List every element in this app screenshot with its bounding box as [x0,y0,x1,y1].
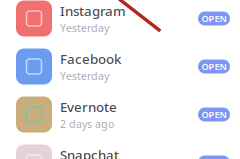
staticText: OPEN [201,60,226,73]
button[interactable]: Instagram [0,0,240,42]
staticText: Instagram [60,2,126,20]
staticText: Yesterday [60,69,109,83]
button[interactable]: Snapchat [0,138,240,159]
staticText: 2 days ago [60,117,114,131]
staticText: Yesterday [60,21,109,35]
staticText: Snapchat [60,146,119,159]
button[interactable]: Facebook [0,42,240,90]
staticText: OPEN [201,108,226,121]
staticText: OPEN [201,12,226,25]
staticText: Facebook [60,50,121,68]
button[interactable]: Evernote [0,90,240,138]
staticText: Evernote [60,98,117,116]
